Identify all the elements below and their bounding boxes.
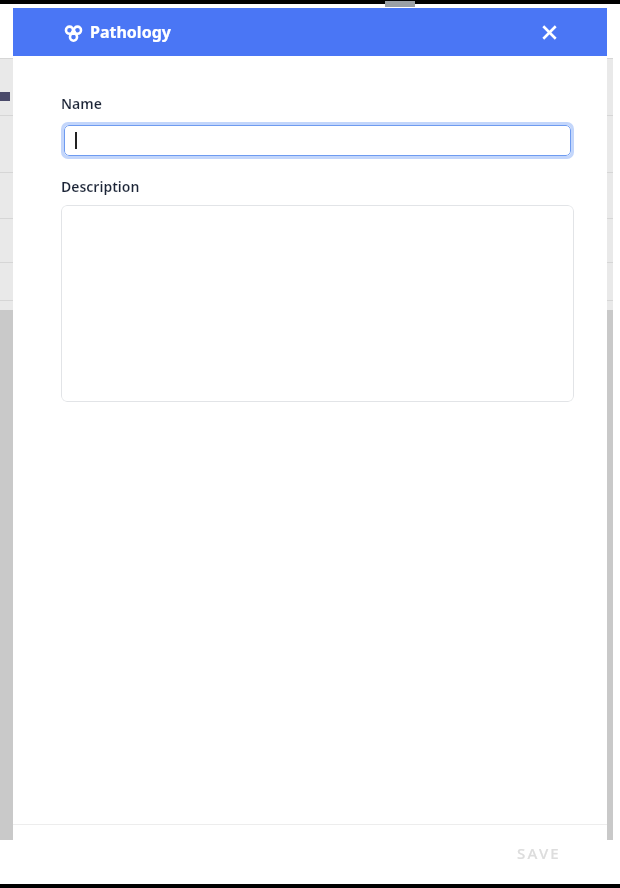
staticText: Pathology	[90, 21, 171, 43]
button[interactable]: Close	[535, 18, 563, 46]
button[interactable]: SAVE	[503, 835, 575, 871]
staticText: SAVE	[517, 843, 561, 863]
button[interactable]	[61, 205, 574, 402]
staticText: Description	[61, 177, 140, 196]
staticText: Name	[61, 94, 102, 113]
button[interactable]	[64, 125, 571, 156]
